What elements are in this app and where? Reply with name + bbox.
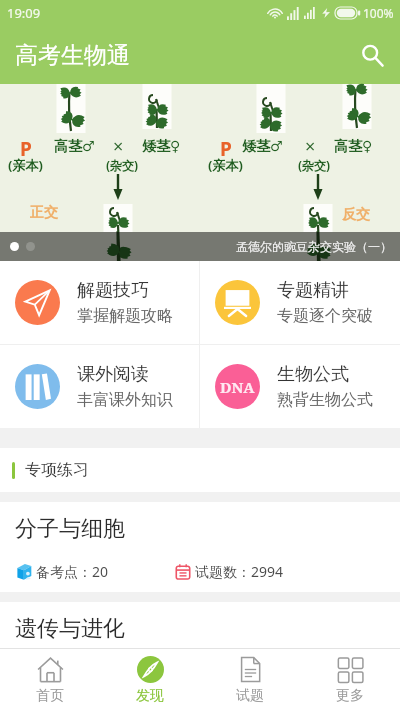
- staticText: 发现: [136, 687, 164, 705]
- staticText: ×: [113, 134, 124, 159]
- staticText: 孟德尔的豌豆杂交实验（一）: [236, 239, 392, 254]
- button[interactable]: 发现: [100, 649, 200, 711]
- staticText: (亲本): [8, 156, 43, 174]
- button[interactable]: 解题技巧: [0, 261, 199, 344]
- button[interactable]: 更多: [300, 649, 400, 711]
- staticText: 课外阅读: [77, 363, 149, 386]
- staticText: P: [20, 136, 32, 162]
- staticText: 矮茎♀: [142, 138, 181, 156]
- staticText: 正交: [30, 204, 58, 222]
- staticText: 备考点：20: [36, 562, 109, 581]
- staticText: 熟背生物公式: [277, 390, 373, 410]
- staticText: 反交: [342, 206, 370, 224]
- staticText: 19:09: [7, 4, 41, 22]
- staticText: 试题数：2994: [195, 562, 284, 581]
- staticText: (杂交): [298, 157, 331, 173]
- staticText: 100%: [363, 5, 394, 21]
- staticText: 高考生物通: [15, 41, 130, 70]
- button[interactable]: DNA: [200, 345, 400, 428]
- staticText: 掌握解题攻略: [77, 306, 173, 326]
- staticText: 首页: [36, 687, 64, 705]
- staticText: P: [220, 136, 232, 162]
- staticText: 解题技巧: [77, 279, 149, 302]
- staticText: 分子与细胞: [15, 515, 125, 543]
- button[interactable]: 首页: [0, 649, 100, 711]
- button[interactable]: Search: [352, 35, 392, 75]
- staticText: 高茎♂: [54, 138, 95, 156]
- staticText: 遗传与进化: [15, 615, 125, 643]
- staticText: ×: [305, 134, 316, 159]
- staticText: 专题精讲: [277, 279, 349, 302]
- staticText: (亲本): [208, 156, 243, 174]
- staticText: (杂交): [106, 157, 139, 173]
- staticText: 专项练习: [25, 460, 89, 480]
- staticText: DNA: [220, 377, 255, 397]
- staticText: 高茎♀: [334, 138, 373, 156]
- staticText: 丰富课外知识: [77, 390, 173, 410]
- staticText: 试题: [236, 687, 264, 705]
- staticText: 更多: [336, 687, 364, 705]
- staticText: 生物公式: [277, 363, 349, 386]
- button[interactable]: 专题精讲: [200, 261, 400, 344]
- staticText: 专题逐个突破: [277, 306, 373, 326]
- button[interactable]: 试题: [200, 649, 300, 711]
- staticText: 矮茎♂: [242, 138, 283, 156]
- button[interactable]: 课外阅读: [0, 345, 199, 428]
- button[interactable]: 分子与细胞: [0, 502, 400, 592]
- button[interactable]: 遗传与进化: [0, 602, 400, 648]
